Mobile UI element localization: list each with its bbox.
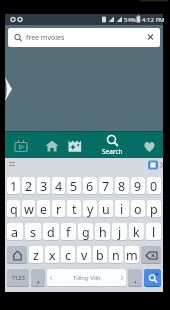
staticText: y	[87, 201, 94, 218]
staticText: k	[133, 224, 140, 241]
button[interactable]: .	[128, 269, 142, 287]
button[interactable]: n	[109, 246, 123, 264]
staticText: j	[118, 224, 122, 241]
button[interactable]: m	[125, 246, 139, 264]
button[interactable]: x	[45, 246, 59, 264]
button[interactable]: Search	[99, 131, 131, 158]
button[interactable]: d	[43, 223, 59, 241]
button[interactable]: w	[22, 200, 35, 218]
staticText: m	[126, 247, 138, 264]
button[interactable]	[67, 133, 99, 158]
button[interactable]	[131, 133, 163, 158]
staticText: 6	[86, 178, 94, 195]
staticText: 54%	[124, 16, 136, 24]
button[interactable]: 8	[115, 177, 129, 195]
staticText: b	[96, 247, 104, 264]
staticText: 0	[150, 178, 158, 195]
staticText: u	[102, 201, 110, 218]
button[interactable]: o	[131, 200, 145, 218]
staticText: 2	[25, 178, 33, 195]
button[interactable]: y	[83, 200, 97, 218]
staticText: 5	[70, 178, 78, 195]
staticText: o	[134, 201, 142, 218]
staticText: g	[82, 224, 90, 241]
staticText: p	[150, 201, 158, 218]
button[interactable]: 5	[67, 177, 81, 195]
button[interactable]: 0	[147, 177, 161, 195]
button[interactable]: e	[37, 200, 50, 218]
button[interactable]: a	[7, 223, 23, 241]
staticText: e	[40, 201, 48, 218]
button[interactable]: t	[67, 200, 81, 218]
staticText: l	[152, 224, 156, 241]
button[interactable]: f	[61, 223, 76, 241]
staticText: 4:12 PM	[142, 16, 165, 24]
button[interactable]: k	[129, 223, 144, 241]
staticText: d	[47, 224, 55, 241]
staticText: n	[112, 247, 120, 264]
staticText: t	[72, 201, 77, 218]
staticText: f	[66, 224, 71, 241]
staticText: i	[120, 201, 124, 218]
staticText: Tiếng Việt	[73, 274, 101, 282]
staticText: ?123	[12, 274, 25, 282]
button[interactable]: 9	[131, 177, 145, 195]
button[interactable]: 3	[37, 177, 50, 195]
button[interactable]	[5, 133, 36, 158]
staticText: 7	[102, 178, 110, 195]
button[interactable]: j	[112, 223, 127, 241]
staticText: free mvoies	[26, 33, 65, 43]
button[interactable]: l	[146, 223, 161, 241]
button[interactable]	[7, 246, 27, 264]
button[interactable]: h	[95, 223, 110, 241]
button[interactable]: z	[29, 246, 43, 264]
button[interactable]: i	[115, 200, 129, 218]
button[interactable]: r	[52, 200, 65, 218]
button[interactable]: Tiếng Việt	[47, 269, 126, 287]
button[interactable]: ?123	[7, 269, 29, 287]
button[interactable]: v	[77, 246, 91, 264]
staticText: r	[56, 201, 62, 218]
staticText: q	[10, 201, 18, 218]
button[interactable]: 7	[99, 177, 113, 195]
staticText: z	[33, 247, 39, 264]
button[interactable]	[144, 269, 161, 287]
button[interactable]: c	[61, 246, 75, 264]
staticText: c	[65, 247, 72, 264]
button[interactable]: p	[147, 200, 161, 218]
button[interactable]: b	[93, 246, 107, 264]
staticText: .	[134, 271, 137, 286]
button[interactable]	[141, 246, 161, 264]
button[interactable]: u	[99, 200, 113, 218]
button[interactable]: s	[25, 223, 41, 241]
button[interactable]: q	[7, 200, 20, 218]
button[interactable]: 2	[22, 177, 35, 195]
staticText: h	[99, 224, 107, 241]
staticText: 1	[10, 178, 18, 195]
button[interactable]: free mvoies	[8, 28, 160, 47]
staticText: s	[30, 224, 36, 241]
staticText: w	[24, 201, 34, 218]
staticText: a	[11, 224, 19, 241]
staticText: x	[49, 247, 56, 264]
staticText: 3	[40, 178, 48, 195]
button[interactable]: 6	[83, 177, 97, 195]
staticText: 9	[134, 178, 142, 195]
button[interactable]: 4	[52, 177, 65, 195]
staticText: 4	[55, 178, 63, 195]
staticText: 8	[118, 178, 126, 195]
staticText: ,	[37, 271, 40, 286]
button[interactable]: 1	[7, 177, 20, 195]
staticText: v	[81, 247, 88, 264]
button[interactable]: g	[78, 223, 93, 241]
staticText: Search	[102, 147, 123, 156]
button[interactable]	[36, 133, 67, 158]
button[interactable]: ,	[31, 269, 45, 287]
